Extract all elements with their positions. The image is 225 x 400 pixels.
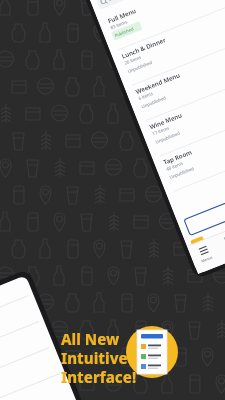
button[interactable]: All New Intuitive Interface promotional …: [0, 0, 225, 400]
